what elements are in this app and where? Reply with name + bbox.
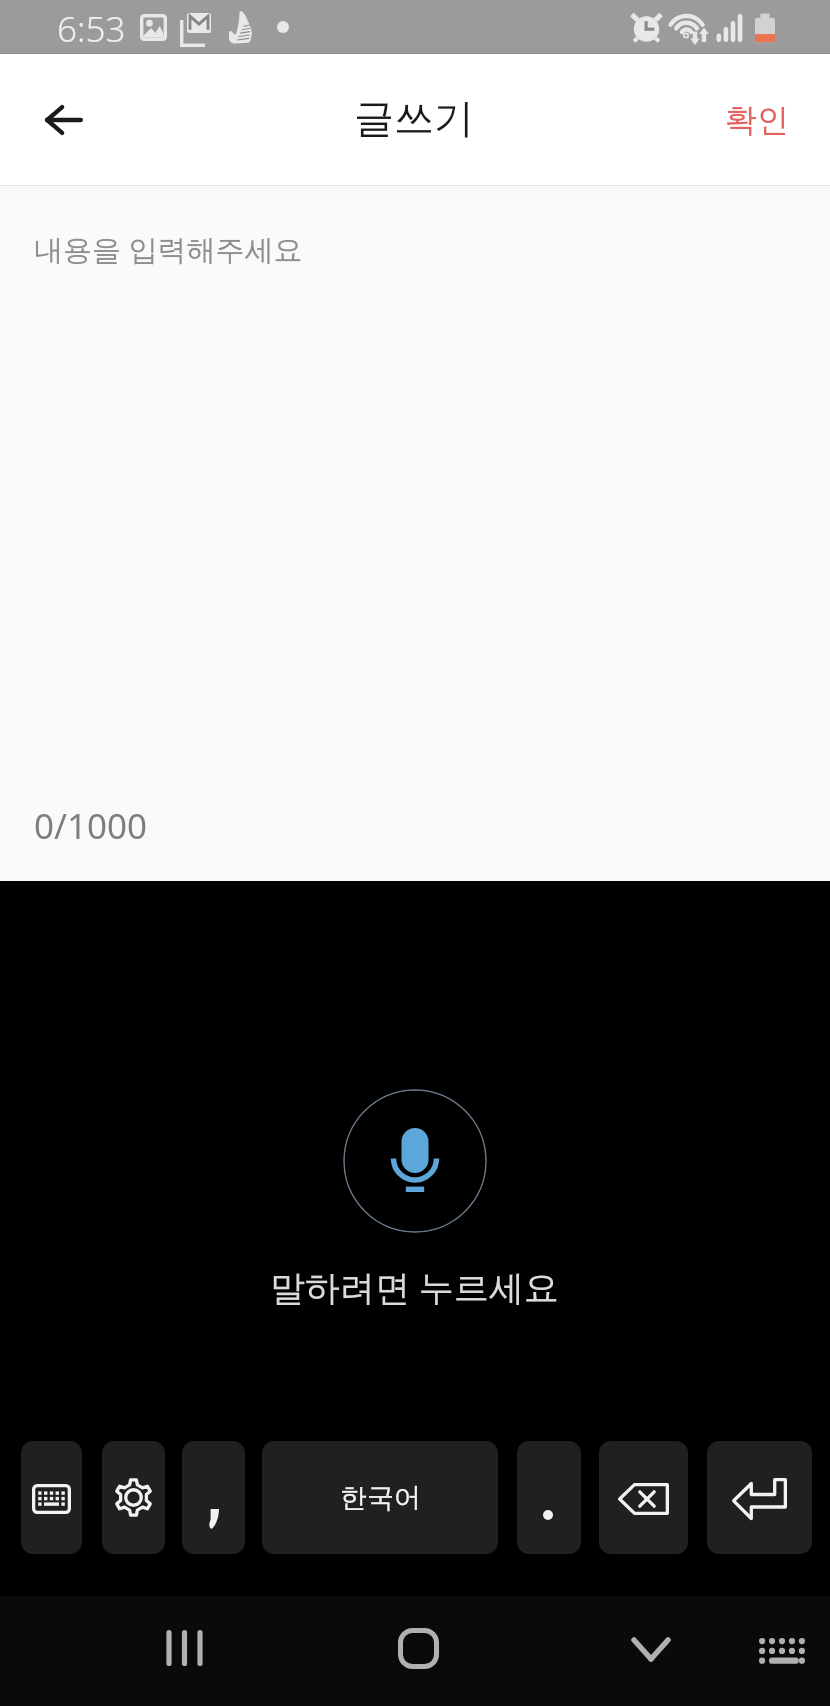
staticText: 글쓰기 bbox=[354, 93, 474, 143]
button[interactable]: Home bbox=[373, 1596, 463, 1706]
button[interactable]: Period bbox=[517, 1441, 581, 1554]
button[interactable]: 내용을 입력해주세요 bbox=[0, 186, 830, 881]
staticText: 내용을 입력해주세요 bbox=[34, 229, 303, 269]
button[interactable]: 확인 bbox=[695, 82, 830, 158]
staticText: 6:53 bbox=[57, 5, 126, 53]
button[interactable]: Switch to keyboard bbox=[21, 1441, 82, 1554]
button[interactable]: Microphone bbox=[343, 1089, 487, 1233]
staticText: 0/1000 bbox=[34, 802, 148, 850]
button[interactable]: Back bbox=[16, 72, 112, 168]
button[interactable]: Keyboard settings bbox=[102, 1441, 165, 1554]
button[interactable]: Hide keyboard bbox=[606, 1596, 696, 1706]
button[interactable]: 한국어 bbox=[262, 1441, 498, 1554]
staticText: 확인 bbox=[725, 100, 789, 140]
button[interactable]: Backspace bbox=[599, 1441, 688, 1554]
button[interactable]: Comma bbox=[182, 1441, 245, 1554]
button[interactable]: Enter bbox=[707, 1441, 812, 1554]
button[interactable]: Recents bbox=[140, 1596, 230, 1706]
staticText: 말하려면 누르세요 bbox=[270, 1263, 560, 1311]
button[interactable]: Change keyboard bbox=[737, 1596, 827, 1706]
staticText: 한국어 bbox=[340, 1481, 421, 1515]
